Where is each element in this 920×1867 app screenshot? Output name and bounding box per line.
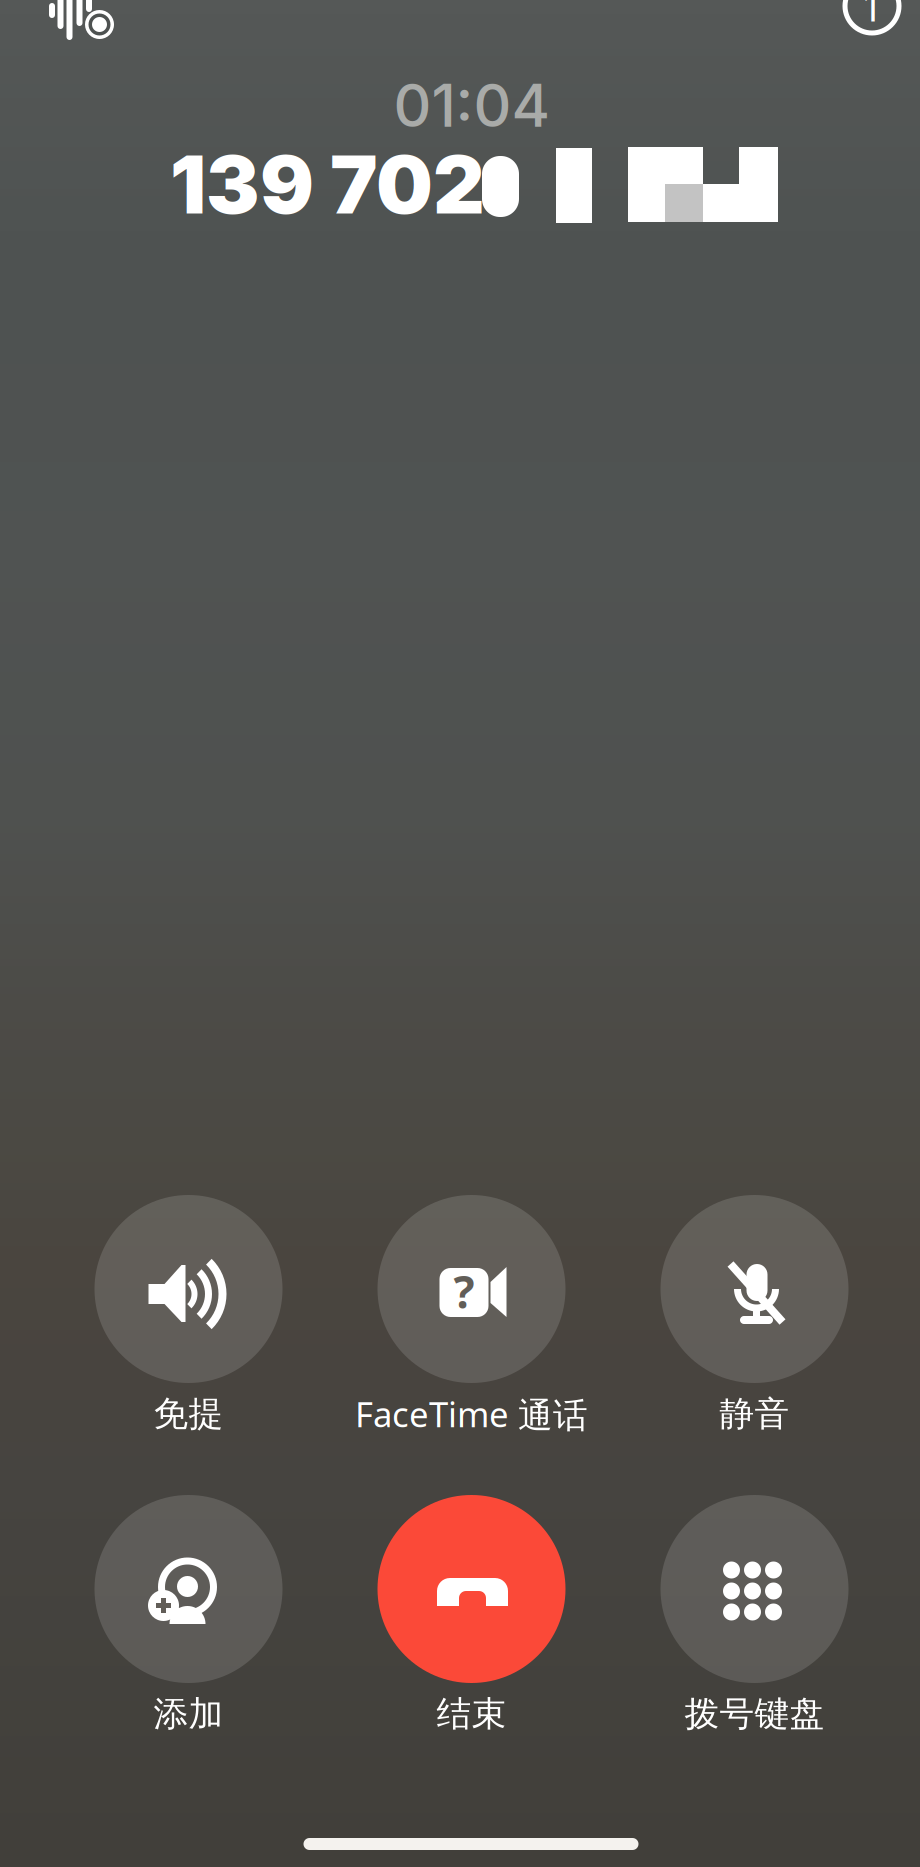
staticText: 1 [860,0,883,32]
staticText: 添加 [153,1693,223,1735]
staticText: FaceTime 通话 [355,1391,588,1437]
staticText: 139 702 [170,136,485,233]
button[interactable]: 拨号键盘 [613,1495,896,1745]
button[interactable]: 添加 [47,1495,330,1745]
button[interactable]: 结束 [330,1495,613,1745]
staticText: 结束 [436,1693,506,1735]
staticText: 静音 [719,1393,789,1435]
staticText: 拨号键盘 [684,1693,824,1735]
staticText: 免提 [153,1393,223,1435]
staticText: 01:04 [393,70,550,141]
button[interactable]: 免提 [47,1195,330,1445]
button[interactable]: 静音 [613,1195,896,1445]
button[interactable]: ? [330,1195,613,1445]
button[interactable]: Calls in progress [840,0,904,38]
button[interactable]: Call recording [49,0,121,52]
staticText: ? [453,1262,474,1321]
